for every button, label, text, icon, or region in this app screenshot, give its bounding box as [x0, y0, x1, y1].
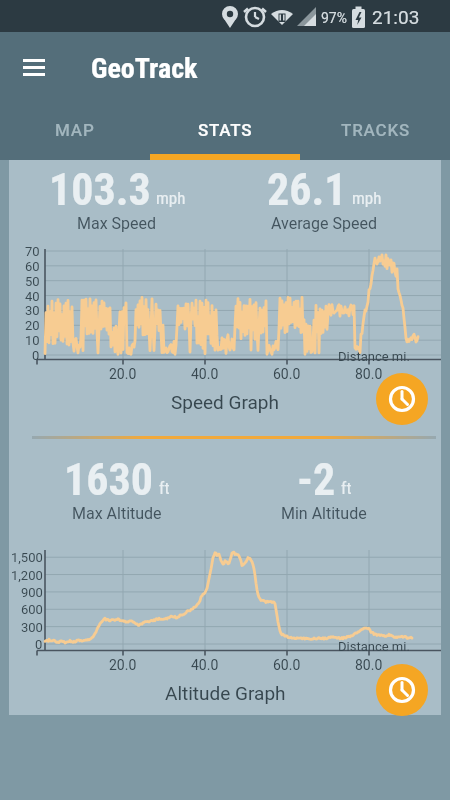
staticText: 40	[25, 289, 40, 304]
staticText: TRACKS	[341, 120, 410, 140]
staticText: 40.0	[191, 366, 219, 382]
staticText: 103.3	[49, 164, 151, 216]
staticText: 80.0	[355, 657, 383, 673]
button[interactable]	[12, 57, 56, 83]
staticText: 97%	[321, 10, 347, 26]
staticText: 26.1	[267, 164, 347, 216]
staticText: Max Speed	[77, 214, 157, 233]
staticText: 1,500	[11, 550, 43, 565]
staticText: 0	[35, 637, 43, 652]
staticText: -2	[297, 454, 336, 506]
staticText: MAP	[55, 120, 95, 140]
staticText: Altitude Graph	[165, 682, 286, 704]
button[interactable]: TRACKS	[300, 100, 450, 160]
staticText: 60	[25, 259, 40, 274]
button[interactable]	[376, 373, 428, 425]
staticText: 70	[25, 244, 40, 259]
staticText: GeoTrack	[91, 52, 198, 85]
staticText: 900	[21, 585, 43, 600]
staticText: 0	[32, 348, 40, 363]
staticText: 20.0	[109, 657, 137, 673]
staticText: mph	[352, 188, 382, 208]
staticText: Distance mi.	[338, 639, 410, 654]
staticText: 20	[25, 318, 40, 333]
staticText: STATS	[198, 120, 253, 140]
staticText: Average Speed	[271, 214, 377, 233]
staticText: 10	[25, 333, 40, 348]
staticText: ft	[159, 478, 170, 498]
button[interactable]: STATS	[150, 100, 300, 160]
staticText: Speed Graph	[171, 391, 280, 413]
staticText: 60.0	[273, 366, 301, 382]
staticText: 60.0	[273, 657, 301, 673]
staticText: 50	[25, 274, 40, 289]
staticText: 21:03	[372, 6, 420, 28]
staticText: 1,200	[11, 568, 43, 583]
staticText: Distance mi.	[338, 349, 410, 364]
staticText: 30	[25, 303, 40, 318]
staticText: 1630	[64, 454, 154, 506]
staticText: Max Altitude	[72, 504, 162, 523]
button[interactable]: MAP	[0, 100, 150, 160]
staticText: 20.0	[109, 366, 137, 382]
staticText: 300	[21, 620, 43, 635]
staticText: 600	[21, 602, 43, 617]
staticText: ft	[341, 478, 352, 498]
staticText: mph	[156, 188, 186, 208]
staticText: Min Altitude	[281, 504, 367, 523]
staticText: 40.0	[191, 657, 219, 673]
button[interactable]	[376, 664, 428, 716]
staticText: 80.0	[355, 366, 383, 382]
